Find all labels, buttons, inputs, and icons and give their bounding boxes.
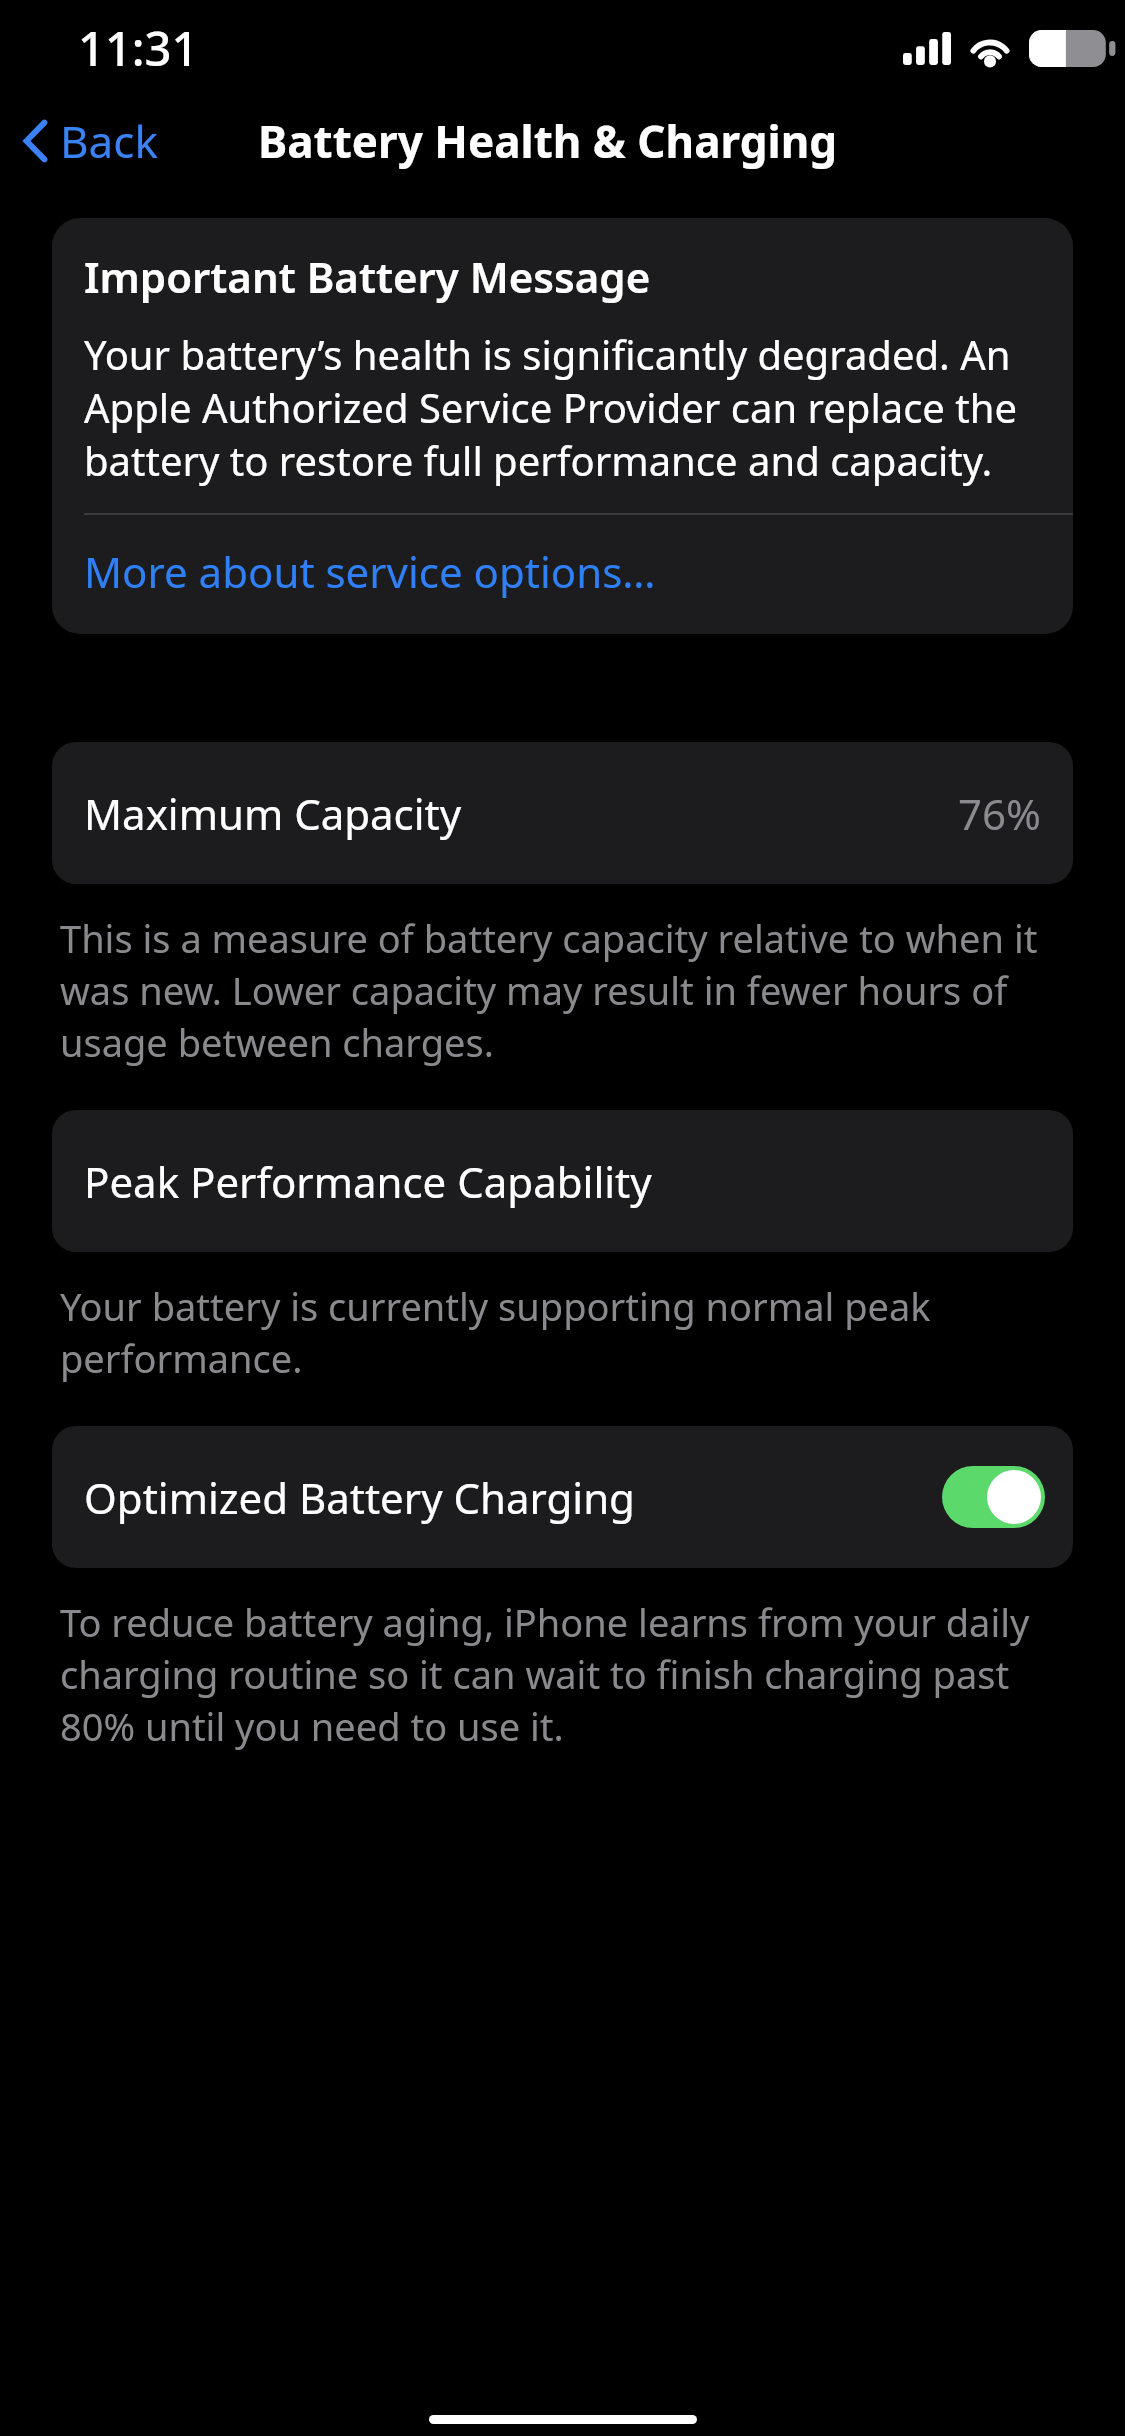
button[interactable]: Optimized Battery Charging, on [942,1466,1045,1528]
staticText: Optimized Battery Charging [84,1469,635,1526]
button[interactable]: Peak Performance Capability [52,1110,1073,1252]
staticText: Battery Health & Charging [258,111,838,171]
staticText: Peak Performance Capability [84,1153,652,1210]
button[interactable]: More about service options… [52,515,1073,634]
staticText: 11:31 [78,16,199,80]
button[interactable]: Maximum Capacity [52,742,1073,884]
button[interactable]: Back [0,101,176,181]
staticText: 76% [958,785,1041,842]
staticText: Important Battery Message [84,248,651,305]
staticText: Back [60,111,158,171]
staticText: More about service options… [84,543,656,600]
staticText: Your battery’s health is significantly d… [84,327,1041,487]
staticText: Your battery is currently supporting nor… [60,1280,1065,1384]
staticText: Maximum Capacity [84,785,462,842]
staticText: This is a measure of battery capacity re… [60,912,1065,1068]
staticText: To reduce battery aging, iPhone learns f… [60,1596,1065,1752]
